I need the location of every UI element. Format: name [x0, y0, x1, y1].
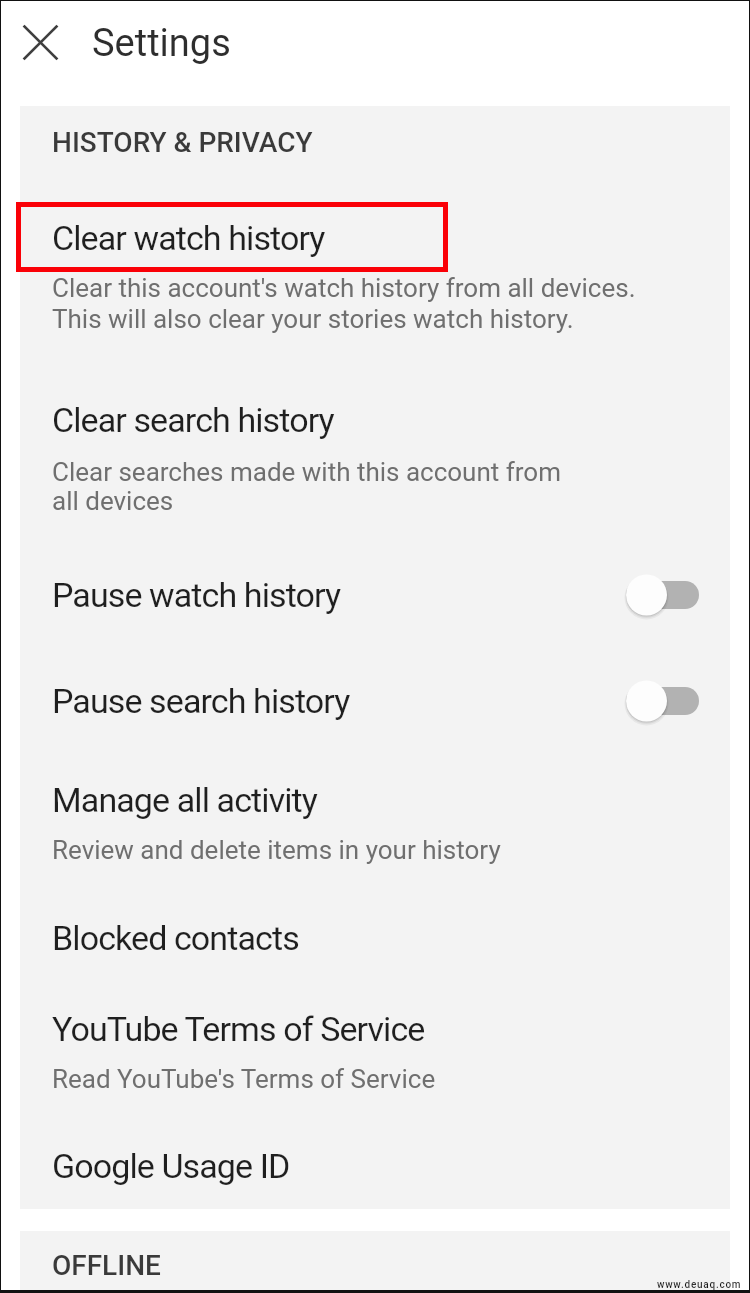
staticText: Clear watch history: [52, 218, 325, 258]
button[interactable]: Clear search history: [20, 369, 730, 518]
staticText: This will also clear your stories watch …: [52, 304, 574, 334]
button[interactable]: Clear watch history: [20, 186, 730, 336]
staticText: Manage all activity: [52, 780, 317, 820]
staticText: all devices: [52, 486, 174, 516]
staticText: Pause watch history: [52, 575, 341, 615]
staticText: Clear this account's watch history from …: [52, 273, 636, 303]
staticText: Read YouTube's Terms of Service: [52, 1064, 436, 1094]
staticText: YouTube Terms of Service: [52, 1009, 425, 1049]
staticText: HISTORY & PRIVACY: [52, 126, 313, 159]
staticText: OFFLINE: [52, 1249, 161, 1282]
staticText: Clear searches made with this account fr…: [52, 457, 561, 487]
button[interactable]: Manage all activity: [20, 749, 730, 883]
button[interactable]: Pause search history: [20, 657, 730, 749]
staticText: Settings: [92, 21, 231, 66]
staticText: Pause search history: [52, 681, 350, 721]
staticText: Google Usage ID: [52, 1146, 290, 1186]
button[interactable]: Pause watch history: [20, 551, 730, 643]
button[interactable]: YouTube Terms of Service: [20, 978, 730, 1113]
staticText: Review and delete items in your history: [52, 835, 501, 865]
staticText: Clear search history: [52, 400, 334, 440]
button[interactable]: Settings: [81, 8, 281, 76]
staticText: Blocked contacts: [52, 918, 299, 958]
button[interactable]: Google Usage ID: [20, 1115, 730, 1209]
button[interactable]: Toggle: [621, 681, 707, 731]
button[interactable]: Toggle: [621, 575, 707, 625]
button[interactable]: Close settings: [19, 21, 62, 64]
staticText: www.deuaq.com: [657, 1279, 742, 1291]
button[interactable]: Blocked contacts: [20, 887, 730, 977]
